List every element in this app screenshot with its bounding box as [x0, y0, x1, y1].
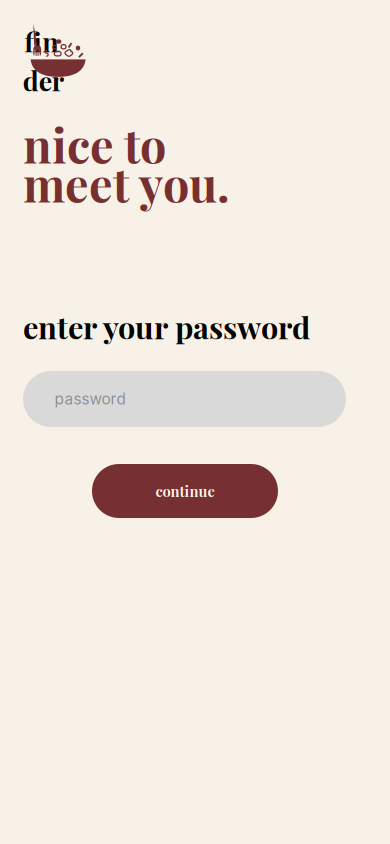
staticText: continue: [155, 481, 214, 501]
button[interactable]: continue: [92, 464, 278, 518]
staticText: fin: [24, 23, 58, 59]
staticText: meet you.: [23, 152, 230, 214]
staticText: password: [54, 390, 125, 408]
staticText: enter your password: [23, 306, 310, 347]
staticText: der: [23, 62, 64, 98]
staticText: nice to: [23, 113, 166, 175]
